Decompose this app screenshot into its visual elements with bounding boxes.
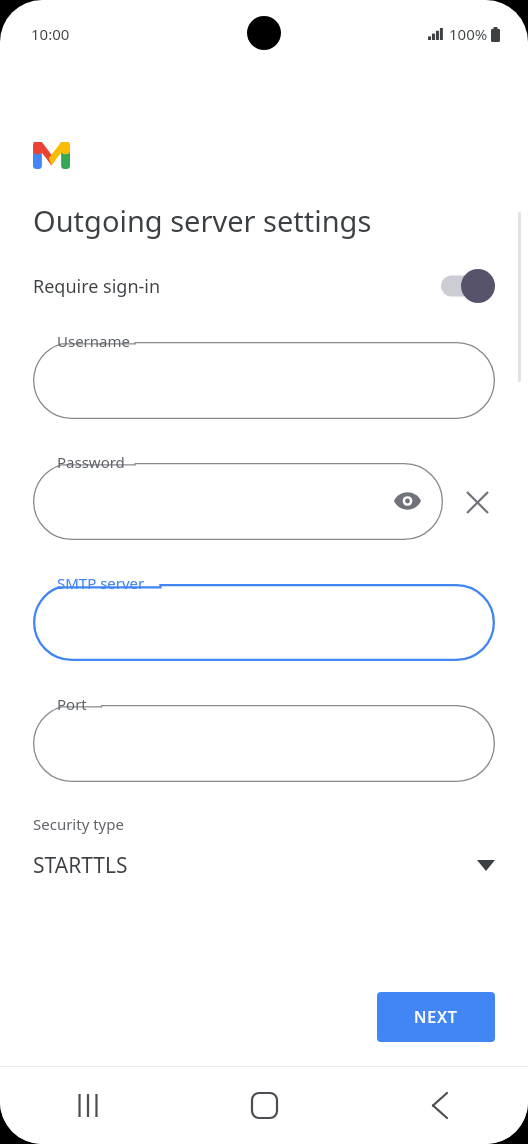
button[interactable]: Port [33,694,495,782]
button[interactable]: Require sign-in [33,262,495,310]
staticText: 10:00 [31,24,70,44]
staticText: Security type [33,814,124,834]
staticText: NEXT [414,1006,458,1028]
staticText: STARTTLS [33,851,128,880]
staticText: 100% [449,24,488,44]
button[interactable]: Home [176,1067,352,1144]
button[interactable]: Show password [389,483,425,519]
staticText: Password [57,452,125,472]
button[interactable]: Password [33,452,443,540]
button[interactable]: SMTP server [33,573,495,661]
staticText: Username [57,331,130,351]
button[interactable]: NEXT [377,992,495,1042]
button[interactable]: Username [33,331,495,419]
staticText: Require sign-in [33,274,161,299]
button[interactable]: Recents [0,1067,176,1144]
staticText: SMTP server [57,573,145,593]
staticText: Outgoing server settings [33,201,372,240]
button[interactable]: Back [352,1067,528,1144]
button[interactable]: Clear password [459,484,495,520]
button[interactable]: Security type [33,814,495,880]
staticText: Port [57,694,87,714]
